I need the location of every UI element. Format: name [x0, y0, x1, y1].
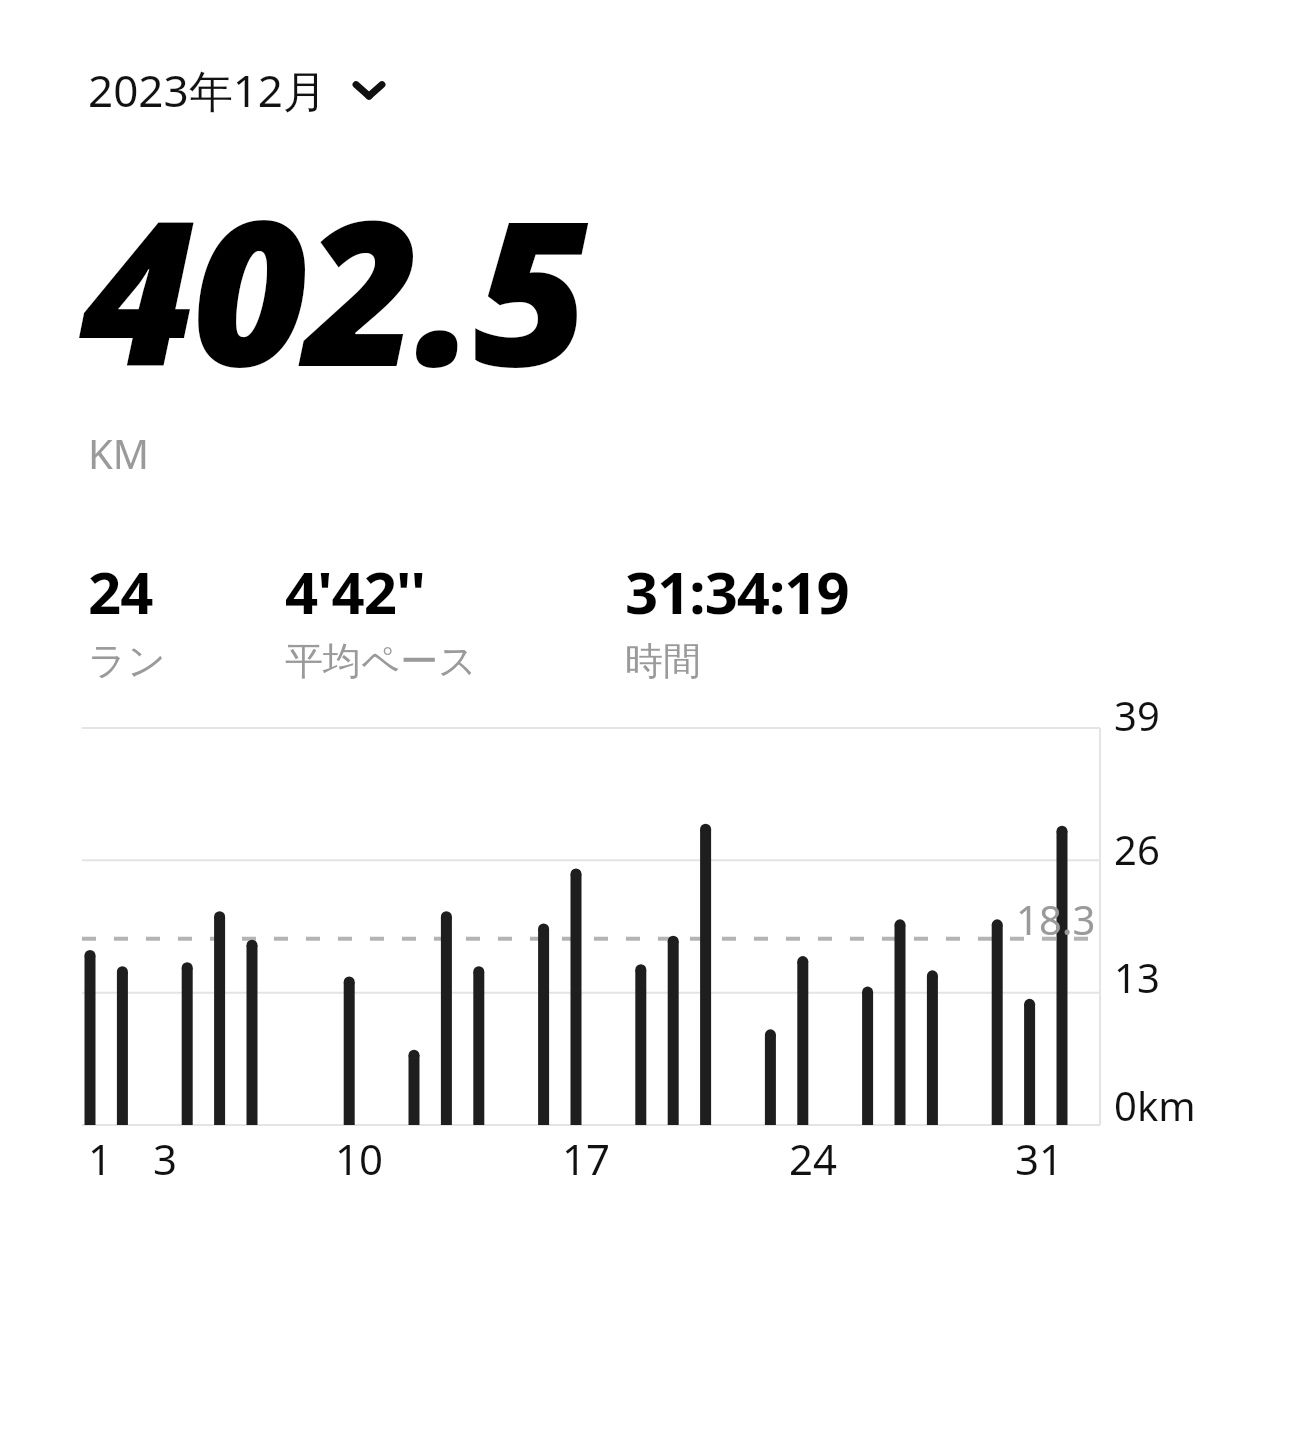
staticText: 26 — [1114, 822, 1160, 876]
staticText: 31:34:19 — [625, 552, 849, 631]
button[interactable]: 4'42'' — [285, 552, 477, 685]
staticText: 13 — [1114, 950, 1160, 1004]
staticText: ラン — [88, 637, 166, 685]
staticText: KM — [88, 426, 150, 480]
button[interactable]: 2023年12月 — [88, 56, 400, 124]
staticText: 0km — [1114, 1078, 1196, 1132]
staticText: 39 — [1114, 688, 1160, 742]
staticText: 4'42'' — [285, 552, 425, 631]
staticText: 2023年12月 — [88, 60, 328, 120]
staticText: 時間 — [625, 637, 701, 685]
button[interactable]: 31:34:19 — [625, 552, 849, 685]
staticText: 18.3 — [1016, 892, 1096, 946]
button[interactable]: 24 — [88, 552, 166, 685]
staticText: 17 — [560, 1130, 612, 1187]
staticText: 31 — [1013, 1130, 1065, 1187]
staticText: 24 — [787, 1130, 839, 1187]
staticText: 1 — [74, 1130, 126, 1187]
staticText: 平均ペース — [285, 637, 477, 685]
staticText: 402.5 — [80, 152, 586, 424]
staticText: 24 — [88, 552, 153, 631]
staticText: 10 — [333, 1130, 385, 1187]
staticText: 3 — [139, 1130, 191, 1187]
